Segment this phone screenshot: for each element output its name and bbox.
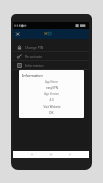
staticText: OK — [49, 111, 54, 115]
staticText: 4.0 — [49, 98, 54, 102]
button[interactable]: Change PIN — [13, 43, 89, 52]
staticText: Re-activate — [25, 54, 43, 58]
button[interactable]: OK — [44, 110, 59, 116]
button[interactable]: Recents — [66, 151, 74, 158]
staticText: Information — [22, 73, 43, 78]
staticText: easyVPN — [46, 86, 58, 90]
staticText: Visit Website — [43, 105, 61, 109]
button[interactable]: Re-activate — [13, 52, 89, 61]
button[interactable]: Back — [28, 151, 36, 158]
button[interactable]: Information — [13, 61, 89, 70]
staticText: App Version — [44, 92, 59, 96]
staticText: Information — [25, 63, 44, 67]
staticText: App Name — [45, 80, 58, 84]
staticText: Change PIN — [25, 45, 44, 49]
button[interactable]: Home — [47, 151, 55, 158]
button[interactable]: Close — [13, 30, 20, 37]
